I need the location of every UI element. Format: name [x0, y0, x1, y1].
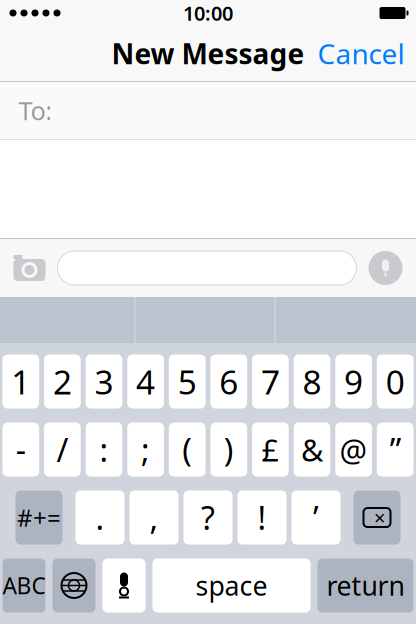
staticText: ”: [390, 428, 401, 471]
staticText: 2: [53, 359, 72, 404]
button[interactable]: &: [294, 422, 330, 476]
staticText: ?: [201, 496, 215, 539]
staticText: !: [257, 496, 266, 539]
button[interactable]: space: [152, 558, 310, 612]
staticText: 1: [11, 359, 30, 404]
staticText: -: [16, 428, 26, 471]
staticText: 3: [94, 359, 113, 404]
button[interactable]: 2: [44, 354, 81, 408]
staticText: New Message: [111, 35, 304, 72]
button[interactable]: .: [75, 490, 124, 544]
button[interactable]: 8: [294, 354, 330, 408]
staticText: ABC: [2, 570, 45, 600]
staticText: ×: [374, 504, 385, 531]
staticText: 7: [261, 359, 280, 404]
button[interactable]: ”: [377, 422, 413, 476]
button[interactable]: Camera: [1, 245, 57, 291]
staticText: @: [340, 429, 368, 470]
button[interactable]: ABC: [2, 558, 45, 612]
staticText: .: [95, 496, 104, 539]
button[interactable]: (: [169, 422, 205, 476]
button[interactable]: 6: [210, 354, 247, 408]
button[interactable]: ’: [291, 490, 340, 544]
button[interactable]: Cancel: [303, 25, 416, 82]
staticText: #+=: [17, 502, 61, 533]
button[interactable]: Delete: [353, 490, 400, 544]
staticText: (: [182, 428, 192, 471]
staticText: space: [195, 568, 267, 603]
button[interactable]: ): [210, 422, 247, 476]
button[interactable]: return: [317, 558, 413, 612]
staticText: 6: [219, 359, 238, 404]
staticText: 8: [302, 359, 321, 404]
button[interactable]: Dictation: [102, 558, 145, 612]
button[interactable]: 4: [127, 354, 164, 408]
staticText: 4: [136, 359, 155, 404]
staticText: To:: [18, 94, 52, 127]
staticText: return: [326, 568, 404, 603]
button[interactable]: 5: [169, 354, 205, 408]
button[interactable]: !: [237, 490, 286, 544]
staticText: 5: [178, 359, 197, 404]
button[interactable]: Next keyboard: [52, 558, 95, 612]
staticText: ): [224, 428, 234, 471]
button[interactable]: 7: [252, 354, 289, 408]
button[interactable]: Dictate: [356, 245, 414, 291]
staticText: 9: [344, 359, 363, 404]
button[interactable]: 9: [335, 354, 372, 408]
staticText: ’: [313, 496, 319, 539]
button[interactable]: ?: [183, 490, 232, 544]
staticText: /: [56, 428, 68, 471]
button[interactable]: 1: [2, 354, 39, 408]
staticText: 0: [386, 359, 405, 404]
staticText: Cancel: [317, 35, 404, 72]
button[interactable]: /: [44, 422, 81, 476]
button[interactable]: £: [252, 422, 289, 476]
button[interactable]: #+=: [15, 490, 62, 544]
button[interactable]: @: [335, 422, 372, 476]
staticText: 10:00: [183, 0, 233, 26]
staticText: &: [301, 429, 323, 470]
button[interactable]: To:: [0, 82, 416, 139]
button[interactable]: 0: [377, 354, 413, 408]
button[interactable]: :: [86, 422, 122, 476]
staticText: ,: [149, 496, 158, 539]
button[interactable]: ,: [129, 490, 178, 544]
staticText: £: [261, 429, 279, 470]
staticText: ;: [141, 428, 150, 471]
staticText: :: [99, 428, 108, 471]
button[interactable]: 3: [86, 354, 122, 408]
button[interactable]: ;: [127, 422, 164, 476]
button[interactable]: -: [2, 422, 39, 476]
